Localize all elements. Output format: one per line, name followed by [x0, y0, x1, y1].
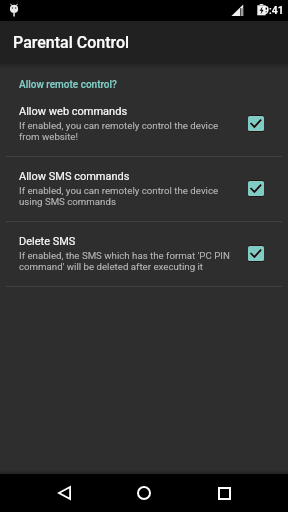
button[interactable]: Allow SMS commands: [0, 157, 288, 221]
button[interactable]: Allow web commands: [0, 92, 288, 156]
staticText: Parental Control: [13, 33, 130, 52]
staticText: Allow SMS commands: [19, 170, 130, 183]
staticText: If enabled, you can remotely control the…: [19, 120, 238, 142]
button[interactable]: Enabled, toggle setting: [248, 115, 264, 132]
staticText: Delete SMS: [19, 235, 76, 248]
staticText: Allow web commands: [19, 105, 128, 118]
button[interactable]: Recent apps: [204, 474, 244, 512]
staticText: If enabled, the SMS which has the format…: [19, 250, 238, 272]
staticText: If enabled, you can remotely control the…: [19, 185, 238, 207]
button[interactable]: Enabled, toggle setting: [248, 180, 264, 197]
button[interactable]: Home: [124, 474, 164, 512]
button[interactable]: Delete SMS: [0, 222, 288, 286]
staticText: Allow remote control?: [19, 79, 117, 91]
button[interactable]: Enabled, toggle setting: [248, 245, 264, 262]
button[interactable]: Back: [44, 474, 84, 512]
staticText: 9:41: [263, 4, 284, 16]
